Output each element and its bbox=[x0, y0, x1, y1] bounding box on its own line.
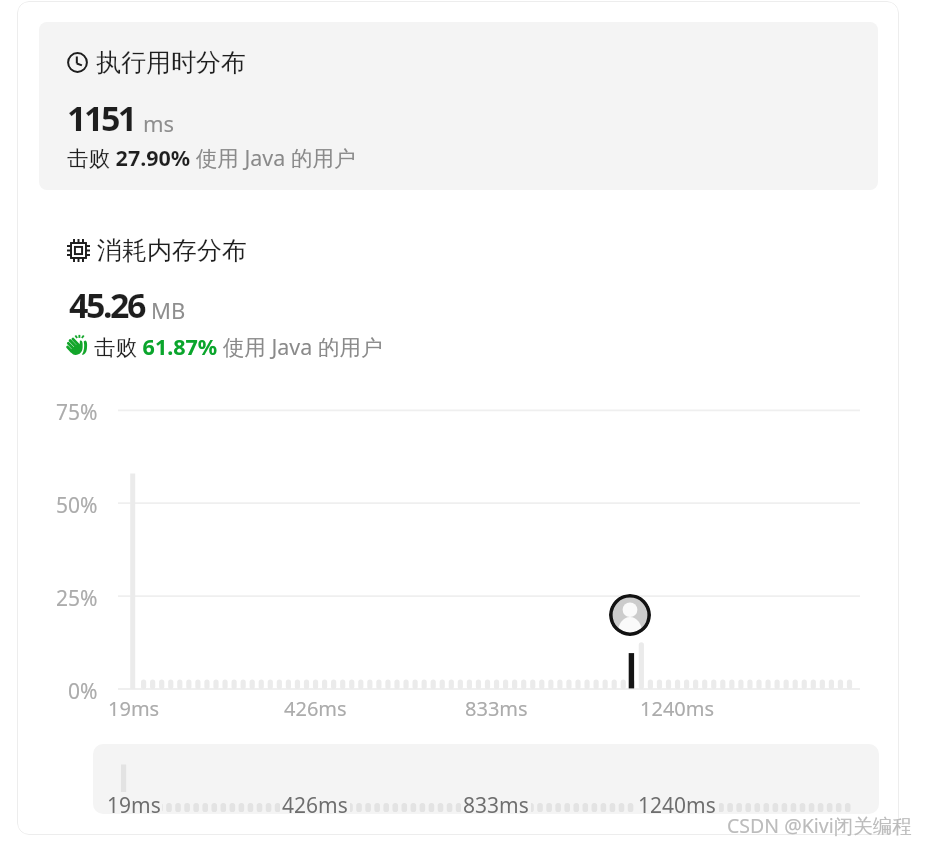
staticText: 75% bbox=[56, 398, 98, 427]
staticText: 426ms bbox=[284, 695, 347, 722]
staticText: CSDN @Kivi闭关编程 bbox=[727, 812, 912, 839]
staticText: 1240ms bbox=[640, 695, 715, 722]
staticText: 1240ms bbox=[638, 791, 716, 813]
staticText: 执行用时分布 bbox=[96, 47, 246, 78]
staticText: 0% bbox=[68, 677, 98, 706]
staticText: 19ms bbox=[108, 695, 160, 722]
staticText: 25% bbox=[56, 584, 98, 613]
staticText: 50% bbox=[56, 491, 98, 520]
staticText: 833ms bbox=[463, 791, 529, 813]
staticText: 426ms bbox=[282, 791, 348, 813]
staticText: 击败 27.90% 使用 Java 的用户 bbox=[67, 143, 356, 172]
button[interactable]: 19ms bbox=[93, 744, 879, 814]
button[interactable]: 执行用时分布 bbox=[39, 22, 878, 190]
staticText: MB bbox=[151, 295, 186, 325]
staticText: 1151 bbox=[67, 95, 135, 141]
staticText: 击败 61.87% 使用 Java 的用户 bbox=[94, 332, 383, 361]
staticText: 45.26 bbox=[69, 282, 144, 328]
staticText: 833ms bbox=[465, 695, 528, 722]
staticText: ms bbox=[143, 108, 175, 138]
staticText: 19ms bbox=[107, 791, 161, 813]
staticText: 消耗内存分布 bbox=[97, 235, 247, 266]
button[interactable]: Your submission bbox=[609, 594, 651, 636]
